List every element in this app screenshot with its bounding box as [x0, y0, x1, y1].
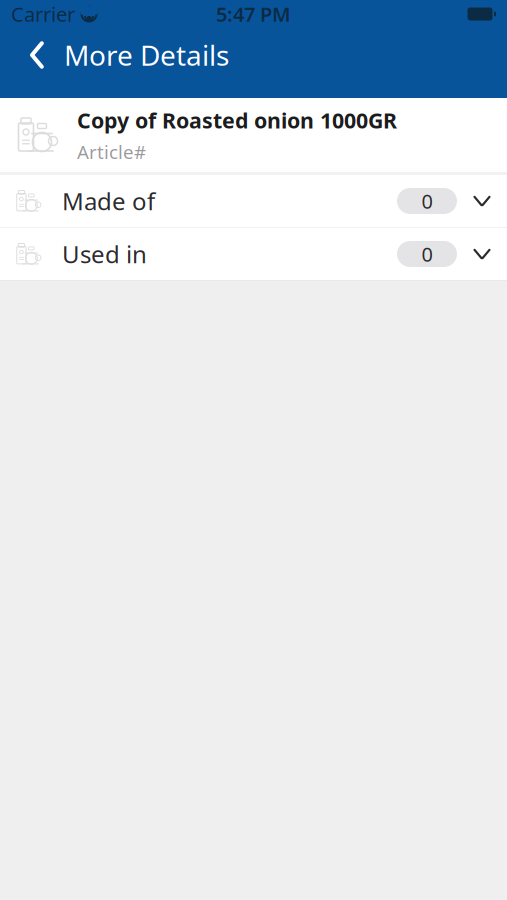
staticText: 0 [421, 188, 432, 214]
button[interactable]: Used in [0, 228, 507, 280]
staticText: 5:47 PM [216, 1, 291, 27]
staticText: Article# [77, 139, 146, 164]
staticText: 0 [421, 241, 432, 267]
staticText: Carrier [11, 1, 75, 27]
button[interactable]: Copy of Roasted onion 1000GR [0, 98, 507, 172]
staticText: More Details [64, 36, 229, 74]
staticText: Used in [62, 238, 147, 270]
staticText: Copy of Roasted onion 1000GR [77, 106, 397, 134]
button[interactable]: Made of [0, 175, 507, 227]
staticText: Made of [62, 185, 155, 217]
button[interactable]: Back [10, 28, 64, 82]
